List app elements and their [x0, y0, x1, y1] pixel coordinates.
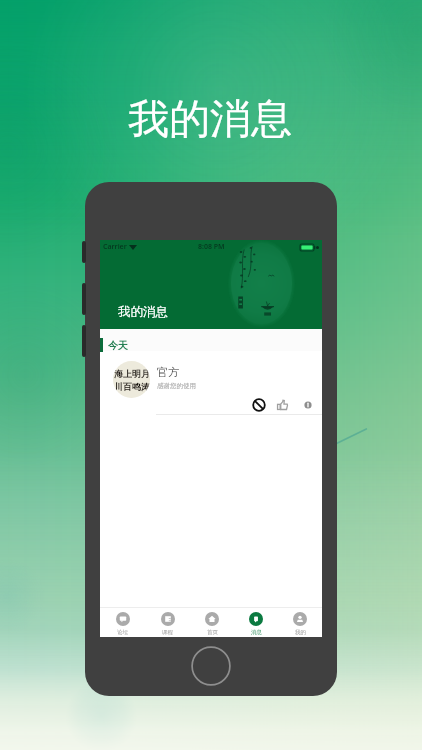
staticText: 我的消息	[118, 304, 168, 320]
staticText: 消息	[251, 629, 262, 636]
staticText: 我的	[295, 629, 306, 636]
button[interactable]: Info	[300, 397, 316, 413]
staticText: 官方	[157, 365, 179, 379]
staticText: 论坛	[117, 629, 128, 636]
staticText: 川百鸣涛	[114, 381, 150, 392]
staticText: 海上明月	[114, 368, 150, 379]
button[interactable]: 课程	[145, 608, 190, 637]
staticText: 今天	[108, 339, 128, 352]
staticText: 感谢您的使用	[157, 382, 196, 390]
staticText: 我的消息	[128, 94, 292, 146]
button[interactable]: 消息	[234, 608, 278, 637]
button[interactable]: Block	[251, 397, 267, 413]
staticText: 课程	[162, 629, 173, 636]
staticText: 首页	[207, 629, 218, 636]
button[interactable]: Like	[275, 397, 291, 413]
staticText: 8:08 PM	[198, 242, 225, 252]
button[interactable]: 论坛	[100, 608, 145, 637]
staticText: Carrier	[103, 242, 127, 252]
button[interactable]: 我的	[278, 608, 322, 637]
button[interactable]: Home	[191, 646, 231, 686]
button[interactable]: 海上明月	[100, 351, 322, 415]
button[interactable]: 首页	[190, 608, 234, 637]
